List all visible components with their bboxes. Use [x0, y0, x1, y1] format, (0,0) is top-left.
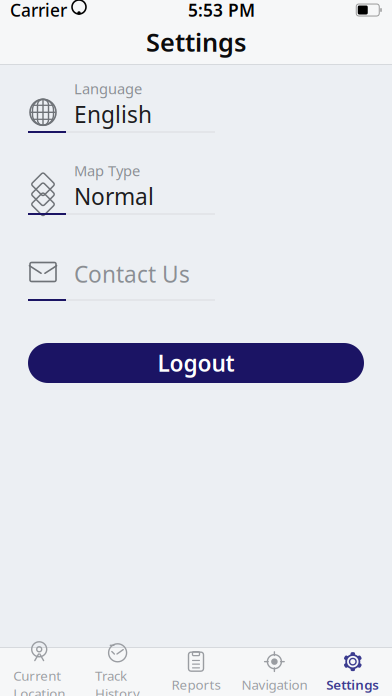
staticText: Logout [157, 348, 234, 378]
button[interactable]: Contact Us [0, 251, 392, 301]
staticText: Normal [74, 181, 154, 211]
button[interactable]: Map Type [0, 165, 392, 215]
staticText: Carrier [10, 0, 67, 21]
staticText: Settings [326, 676, 379, 693]
staticText: Settings [146, 25, 246, 59]
staticText: Navigation [241, 676, 307, 693]
button[interactable]: Current Location [0, 648, 78, 696]
staticText: Map Type [74, 161, 140, 180]
button[interactable]: Track History [78, 648, 157, 696]
button[interactable]: Language [0, 83, 392, 133]
staticText: English [74, 99, 152, 129]
button[interactable]: Logout [28, 343, 364, 383]
button[interactable]: Reports [157, 648, 235, 696]
staticText: Reports [171, 676, 220, 693]
staticText: Contact Us [74, 259, 190, 289]
staticText: 5:53 PM [188, 0, 255, 21]
staticText: Language [74, 79, 142, 98]
staticText: Track History [95, 667, 140, 696]
button[interactable]: Settings [314, 648, 392, 696]
button[interactable]: Navigation [235, 648, 314, 696]
staticText: Current Location [13, 667, 65, 696]
